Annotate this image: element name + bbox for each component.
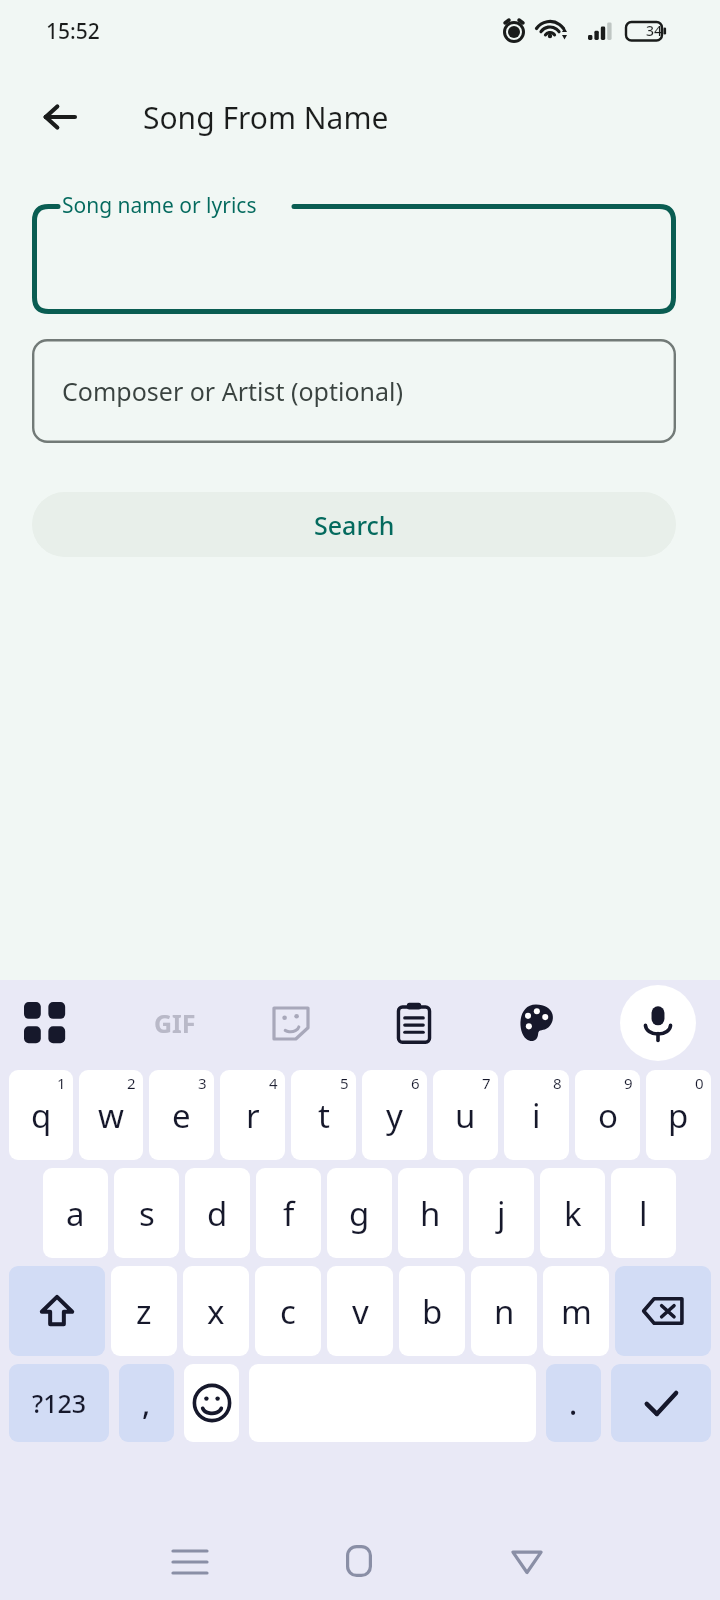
button[interactable]: Backspace [615,1266,711,1356]
staticText: 6 [411,1073,420,1093]
staticText: 34 [646,21,663,40]
button[interactable] [32,204,676,314]
staticText: y [386,1093,403,1138]
staticText: 3 [198,1073,207,1093]
button[interactable]: Keyboard menu [12,980,78,1065]
button[interactable]: e [149,1070,214,1160]
staticText: ?123 [32,1386,87,1420]
staticText: 0 [695,1073,704,1093]
staticText: GIF [154,1006,196,1040]
button[interactable]: n [471,1266,537,1356]
button[interactable]: Clipboard [378,980,450,1065]
staticText: Search [314,508,395,542]
button[interactable]: Composer or Artist (optional) [32,339,676,443]
button[interactable]: k [540,1168,605,1258]
staticText: 4 [269,1073,278,1093]
button[interactable]: v [327,1266,393,1356]
staticText: Song From Name [143,97,389,138]
staticText: q [31,1093,52,1138]
button[interactable]: h [398,1168,463,1258]
staticText: e [172,1093,191,1138]
button[interactable]: s [114,1168,179,1258]
staticText: . [569,1383,578,1424]
button[interactable]: Voice input [620,985,696,1061]
staticText: o [598,1093,618,1138]
button[interactable]: w [79,1070,143,1160]
button[interactable]: r [220,1070,285,1160]
staticText: 2 [127,1073,136,1093]
staticText: 1 [57,1073,66,1093]
staticText: u [455,1093,476,1138]
staticText: 8 [553,1073,562,1093]
staticText: , [142,1383,151,1424]
button[interactable]: g [327,1168,392,1258]
button[interactable]: q [9,1070,73,1160]
button[interactable]: c [255,1266,321,1356]
button[interactable]: z [111,1266,177,1356]
button[interactable]: o [575,1070,640,1160]
button[interactable]: t [291,1070,356,1160]
button[interactable]: u [433,1070,498,1160]
button[interactable]: Theme [500,980,572,1065]
staticText: w [98,1093,124,1138]
button[interactable]: x [183,1266,249,1356]
button[interactable]: GIF [130,980,220,1065]
staticText: i [532,1093,541,1138]
button[interactable]: Back [26,83,94,151]
button[interactable]: Search [32,492,676,557]
staticText: Composer or Artist (optional) [62,374,403,408]
staticText: d [207,1191,228,1236]
button[interactable]: Home [319,1522,399,1600]
staticText: l [639,1191,648,1236]
button[interactable]: ?123 [9,1364,109,1442]
button[interactable]: Period [546,1364,601,1442]
staticText: z [136,1289,152,1334]
staticText: 7 [482,1073,491,1093]
button[interactable]: l [611,1168,676,1258]
staticText: p [668,1093,689,1138]
staticText: c [280,1289,296,1334]
staticText: n [494,1289,515,1334]
staticText: b [422,1289,443,1334]
staticText: 15:52 [46,17,100,46]
staticText: g [349,1191,370,1236]
button[interactable]: Emoji [184,1364,239,1442]
button[interactable]: f [256,1168,321,1258]
staticText: Song name or lyrics [62,191,257,220]
button[interactable]: y [362,1070,427,1160]
staticText: f [283,1191,295,1236]
button[interactable]: m [543,1266,609,1356]
button[interactable]: Enter [611,1364,711,1442]
staticText: v [352,1289,369,1334]
button[interactable]: Shift [9,1266,105,1356]
staticText: j [497,1191,506,1236]
button[interactable]: Recents [150,1522,230,1600]
button[interactable]: i [504,1070,569,1160]
button[interactable]: Comma [119,1364,174,1442]
staticText: a [66,1191,85,1236]
button[interactable]: b [399,1266,465,1356]
staticText: 5 [340,1073,349,1093]
staticText: r [246,1093,260,1138]
staticText: s [139,1191,155,1236]
staticText: x [207,1289,225,1334]
button[interactable]: j [469,1168,534,1258]
button[interactable]: a [43,1168,108,1258]
staticText: k [564,1191,582,1236]
staticText: t [318,1093,330,1138]
staticText: h [420,1191,441,1236]
staticText: m [561,1289,592,1334]
button[interactable]: d [185,1168,250,1258]
staticText: 9 [624,1073,633,1093]
button[interactable]: p [646,1070,711,1160]
button[interactable]: Stickers [255,980,327,1065]
button[interactable]: Back [487,1522,567,1600]
